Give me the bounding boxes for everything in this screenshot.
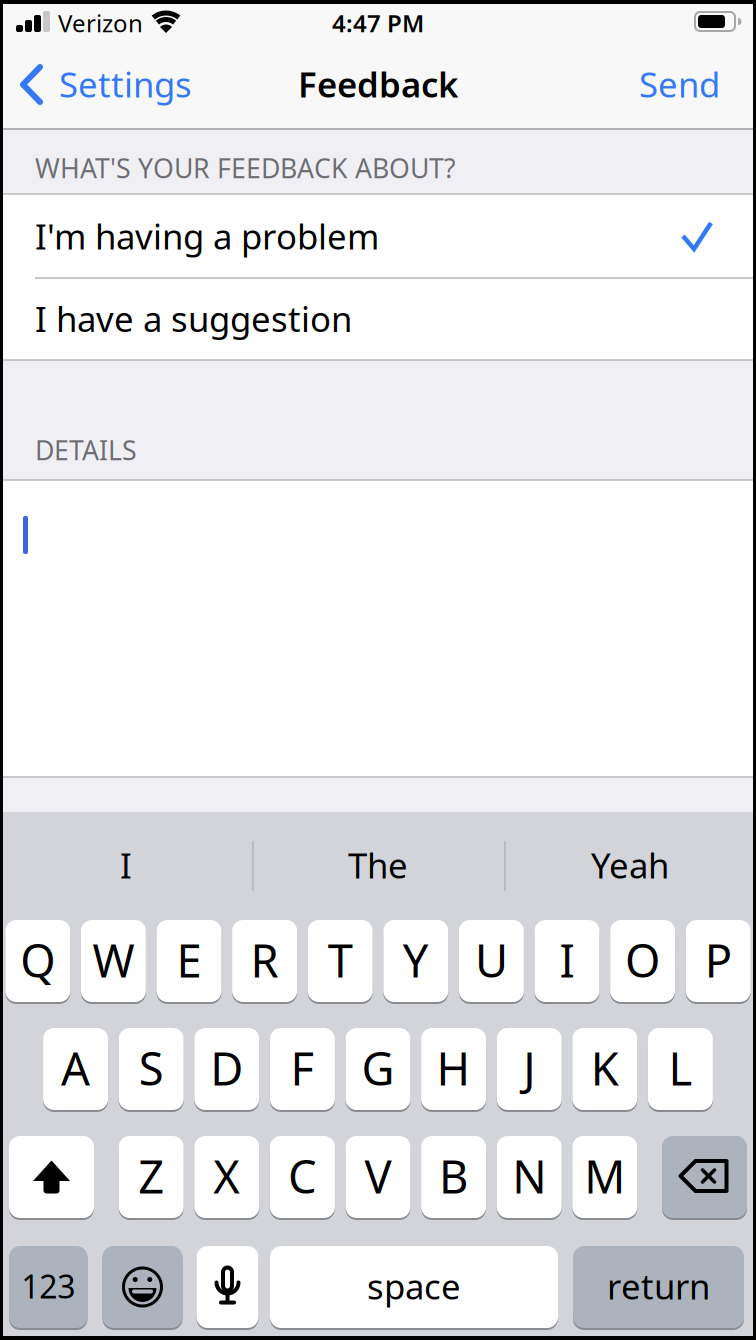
button[interactable]: E [156, 920, 221, 1002]
staticText: Y [403, 930, 429, 990]
button[interactable]: R [232, 920, 297, 1002]
staticText: R [251, 930, 279, 990]
staticText: Settings [59, 61, 192, 107]
button[interactable]: I'm having a problem [0, 194, 756, 278]
button[interactable]: V [345, 1136, 410, 1218]
staticText: G [361, 1038, 394, 1098]
button[interactable]: S [119, 1028, 184, 1110]
staticText: return [607, 1263, 710, 1309]
button[interactable]: Delete [662, 1136, 747, 1218]
staticText: T [328, 930, 353, 990]
button[interactable]: N [497, 1136, 562, 1218]
staticText: DETAILS [35, 432, 137, 468]
button[interactable]: X [194, 1136, 259, 1218]
button[interactable]: 123 [9, 1246, 87, 1328]
button[interactable]: O [610, 920, 675, 1002]
button[interactable]: Details [0, 479, 756, 778]
button[interactable]: Y [383, 920, 448, 1002]
staticText: N [512, 1146, 546, 1206]
staticText: D [210, 1038, 243, 1098]
button[interactable]: I have a suggestion [0, 278, 756, 359]
button[interactable]: K [572, 1028, 637, 1110]
staticText: 123 [21, 1265, 75, 1307]
staticText: F [290, 1038, 314, 1098]
button[interactable]: Emoji [102, 1246, 182, 1328]
button[interactable]: W [81, 920, 146, 1002]
staticText: The [348, 842, 408, 888]
button[interactable]: C [270, 1136, 335, 1218]
staticText: Send [639, 61, 720, 107]
staticText: Z [138, 1146, 164, 1206]
staticText: Feedback [298, 61, 458, 107]
button[interactable]: Yeah [505, 812, 755, 918]
staticText: 4:47 PM [332, 7, 424, 39]
staticText: B [439, 1146, 468, 1206]
button[interactable]: I [1, 812, 251, 918]
button[interactable]: I [534, 920, 599, 1002]
button[interactable]: U [459, 920, 524, 1002]
staticText: Yeah [591, 842, 669, 888]
button[interactable]: A [43, 1028, 108, 1110]
staticText: I'm having a problem [35, 213, 379, 259]
button[interactable]: Q [5, 920, 70, 1002]
button[interactable]: D [194, 1028, 259, 1110]
staticText: W [92, 930, 134, 990]
button[interactable]: Shift [9, 1136, 94, 1218]
button[interactable]: T [308, 920, 373, 1002]
staticText: V [364, 1146, 391, 1206]
staticText: J [523, 1038, 535, 1098]
staticText: O [625, 930, 660, 990]
button[interactable]: space [270, 1246, 558, 1328]
button[interactable]: L [648, 1028, 713, 1110]
button[interactable]: F [270, 1028, 335, 1110]
staticText: I [559, 930, 574, 990]
staticText: S [139, 1038, 164, 1098]
button[interactable]: P [686, 920, 751, 1002]
staticText: L [668, 1038, 692, 1098]
staticText: P [705, 930, 732, 990]
staticText: X [213, 1146, 240, 1206]
button[interactable]: Z [119, 1136, 184, 1218]
button[interactable]: J [497, 1028, 562, 1110]
staticText: Q [20, 930, 55, 990]
button[interactable]: Settings [0, 40, 200, 128]
staticText: E [176, 930, 201, 990]
staticText: I have a suggestion [35, 295, 352, 341]
button[interactable]: G [345, 1028, 410, 1110]
staticText: space [367, 1263, 461, 1309]
button[interactable]: H [421, 1028, 486, 1110]
button[interactable]: return [573, 1246, 744, 1328]
staticText: C [288, 1146, 317, 1206]
staticText: M [584, 1146, 625, 1206]
staticText: K [591, 1038, 619, 1098]
button[interactable]: Dictate [196, 1246, 258, 1328]
button[interactable]: M [572, 1136, 637, 1218]
staticText: Verizon [58, 7, 143, 39]
staticText: A [61, 1038, 90, 1098]
staticText: I [120, 842, 132, 888]
staticText: U [475, 930, 508, 990]
staticText: WHAT'S YOUR FEEDBACK ABOUT? [35, 150, 456, 186]
button[interactable]: B [421, 1136, 486, 1218]
button[interactable]: Send [600, 62, 720, 106]
staticText: H [437, 1038, 471, 1098]
button[interactable]: The [253, 812, 503, 918]
